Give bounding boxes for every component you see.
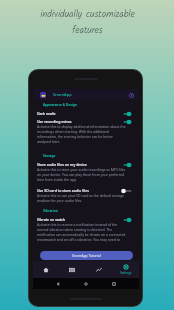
button[interactable]: Recents xyxy=(111,281,117,287)
button[interactable]: Info xyxy=(128,92,134,98)
staticText: Vibrate on watch xyxy=(37,217,66,222)
button[interactable]: Home xyxy=(83,281,89,287)
staticText: individually customizable xyxy=(40,7,135,22)
staticText: Activate this to receive a notification … xyxy=(37,222,126,242)
button[interactable]: Home xyxy=(33,261,59,278)
staticText: Appearance & Design xyxy=(43,103,77,107)
staticText: Activate this to use your SD card as the… xyxy=(37,193,126,203)
staticText: Use recording extras xyxy=(37,119,72,124)
button[interactable]: Back xyxy=(55,281,61,287)
button[interactable]: Recordings xyxy=(59,261,85,278)
staticText: Settings xyxy=(120,271,132,275)
staticText: features xyxy=(72,23,103,38)
button[interactable]: Statistics xyxy=(85,261,112,278)
staticText: SnoreApp xyxy=(53,92,72,97)
staticText: SnoreApp Tutorial xyxy=(72,253,101,258)
button[interactable]: Settings xyxy=(112,261,139,278)
staticText: Storage xyxy=(43,154,56,158)
button[interactable]: SnoreApp Tutorial xyxy=(40,251,133,260)
staticText: Dark mode xyxy=(37,111,56,116)
staticText: Activate this to store your audio record… xyxy=(37,167,126,182)
staticText: Activate this to display additional info… xyxy=(37,124,126,144)
staticText: Vibration xyxy=(43,209,58,213)
staticText: Store audio files on my device xyxy=(37,162,87,167)
staticText: Use SD card to store audio files xyxy=(37,188,89,193)
